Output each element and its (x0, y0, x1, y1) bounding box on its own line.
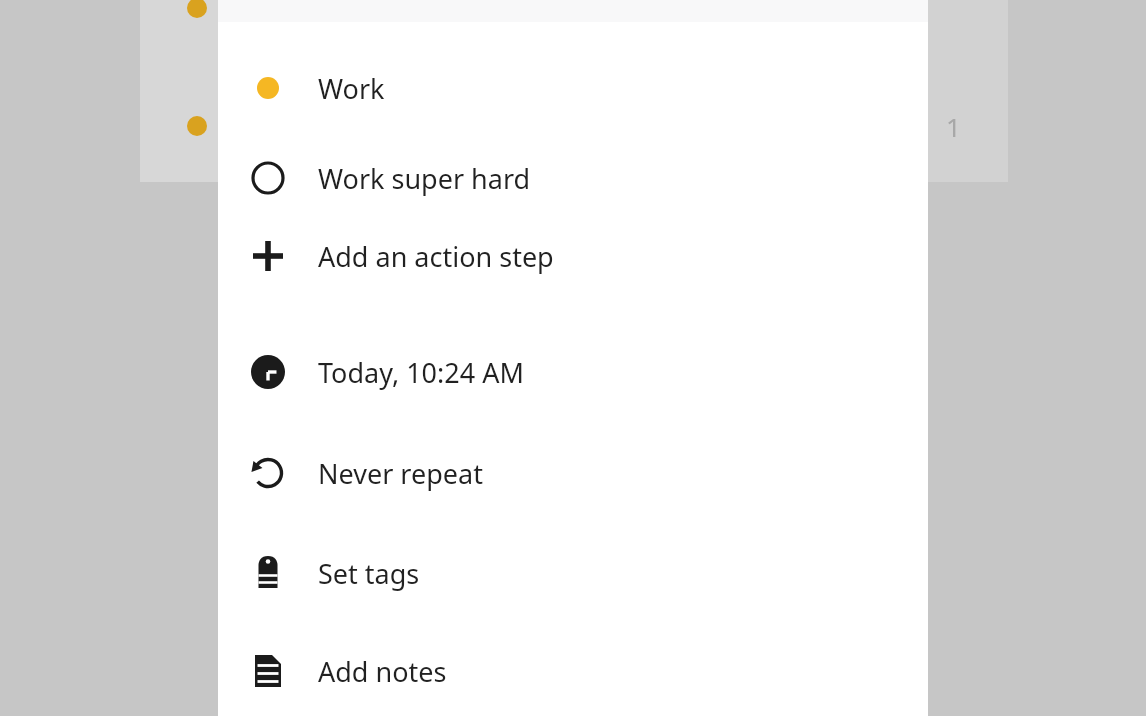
button[interactable]: Today, 10:24 AM (218, 350, 928, 394)
staticText: 1 (946, 109, 961, 144)
staticText: Add an action step (318, 238, 554, 275)
button[interactable]: Set tags (218, 551, 928, 595)
button[interactable]: Work super hard (218, 156, 928, 200)
staticText: Add notes (318, 653, 447, 690)
staticText: Never repeat (318, 455, 483, 492)
staticText: Work (318, 70, 385, 107)
button[interactable]: Add an action step (218, 234, 928, 278)
button[interactable]: Never repeat (218, 451, 928, 495)
staticText: Work super hard (318, 160, 531, 197)
button[interactable]: Work (218, 66, 928, 110)
staticText: Today, 10:24 AM (318, 354, 524, 391)
staticText: Set tags (318, 555, 420, 592)
button[interactable]: Add notes (218, 649, 928, 693)
